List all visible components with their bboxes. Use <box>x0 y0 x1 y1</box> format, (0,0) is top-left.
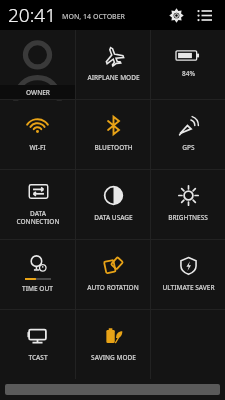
button[interactable]: AIRPLANE MODE <box>76 30 150 99</box>
button[interactable]: BRIGHTNESS <box>151 170 225 239</box>
button[interactable]: DATA CONNECTION <box>0 170 75 239</box>
staticText: BLUETOOTH <box>94 143 133 152</box>
button[interactable]: Settings <box>163 2 189 28</box>
staticText: TIME OUT <box>22 284 53 293</box>
button[interactable]: BLUETOOTH <box>76 100 150 169</box>
button[interactable]: SAVING MODE <box>76 310 150 379</box>
button[interactable]: OWNER <box>0 30 75 99</box>
staticText: 20:41 <box>8 2 57 28</box>
staticText: 84% <box>182 69 195 78</box>
staticText: GPS <box>182 143 195 152</box>
staticText: BRIGHTNESS <box>168 213 208 222</box>
button[interactable]: Edit quick settings <box>191 2 217 28</box>
staticText: WI-FI <box>29 143 46 152</box>
staticText: OWNER <box>26 88 50 97</box>
staticText: DATA USAGE <box>94 213 133 222</box>
staticText: MON, 14 OCTOBER <box>62 12 126 22</box>
staticText: TCAST <box>28 353 48 362</box>
button[interactable]: GPS <box>151 100 225 169</box>
staticText: SAVING MODE <box>91 353 136 362</box>
button[interactable]: TCAST <box>0 310 75 379</box>
button[interactable]: WI-FI <box>0 100 75 169</box>
button[interactable]: AUTO ROTATION <box>76 240 150 309</box>
staticText: DATA CONNECTION <box>16 209 60 226</box>
button[interactable]: TIME OUT <box>0 240 75 309</box>
button[interactable]: 84% <box>151 30 225 99</box>
staticText: AIRPLANE MODE <box>87 73 140 82</box>
button[interactable]: DATA USAGE <box>76 170 150 239</box>
button[interactable]: ULTIMATE SAVER <box>151 240 225 309</box>
staticText: ULTIMATE SAVER <box>162 283 215 292</box>
staticText: AUTO ROTATION <box>87 283 139 292</box>
